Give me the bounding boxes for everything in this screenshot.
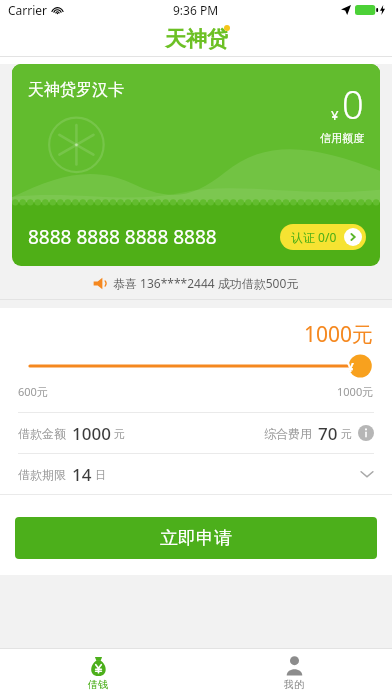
staticText: 0 xyxy=(342,78,364,130)
staticText: 借款期限 xyxy=(18,467,66,482)
staticText: 借钱 xyxy=(88,678,108,691)
button[interactable]: 我的 xyxy=(196,649,392,696)
staticText: 元 xyxy=(114,427,125,441)
staticText: 1000元 xyxy=(337,384,374,399)
staticText: 天神贷 xyxy=(165,26,228,52)
staticText: 70 xyxy=(318,422,338,445)
staticText: 借款金额 xyxy=(18,426,66,441)
staticText: Carrier xyxy=(8,2,48,18)
staticText: 9:36 PM xyxy=(173,2,219,18)
button[interactable]: 借钱 xyxy=(0,649,196,696)
button[interactable]: Loan amount slider xyxy=(30,349,362,383)
button[interactable]: 认证 0/0 xyxy=(280,224,366,250)
staticText: 综合费用 xyxy=(264,426,312,441)
button[interactable]: 借款期限 xyxy=(0,454,392,494)
staticText: 天神贷罗汉卡 xyxy=(28,80,124,100)
staticText: 1000元 xyxy=(304,320,374,349)
staticText: 恭喜 136****2444 成功借款500元 xyxy=(113,275,299,291)
staticText: 元 xyxy=(341,427,352,441)
staticText: 信用额度 xyxy=(320,131,364,145)
staticText: 日 xyxy=(95,468,106,482)
staticText: 600元 xyxy=(18,384,48,399)
staticText: 1000 xyxy=(72,422,111,445)
staticText: ¥ xyxy=(347,359,354,375)
staticText: ¥ xyxy=(331,106,339,124)
button[interactable]: Fee information xyxy=(358,425,374,441)
button[interactable]: 天神贷罗汉卡 xyxy=(12,64,380,266)
button[interactable]: 立即申请 xyxy=(15,517,377,559)
staticText: 8888 8888 8888 8888 xyxy=(28,224,217,250)
staticText: 立即申请 xyxy=(160,527,232,550)
button[interactable]: 恭喜 136****2444 成功借款500元 xyxy=(0,266,392,300)
staticText: 认证 0/0 xyxy=(291,229,337,245)
staticText: 14 xyxy=(72,463,92,486)
staticText: 我的 xyxy=(284,678,304,691)
